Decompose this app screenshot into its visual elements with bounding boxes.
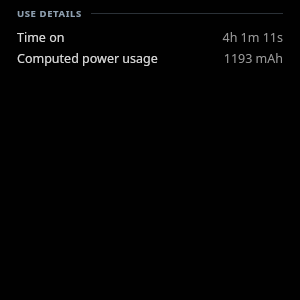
button[interactable]: Computed power usage [0,48,300,69]
button[interactable]: Time on [0,27,300,48]
staticText: 4h 1m 11s [222,29,283,46]
staticText: USE DETAILS [17,7,82,20]
staticText: 1193 mAh [223,50,283,67]
staticText: Time on [17,29,65,46]
staticText: Computed power usage [17,50,158,67]
